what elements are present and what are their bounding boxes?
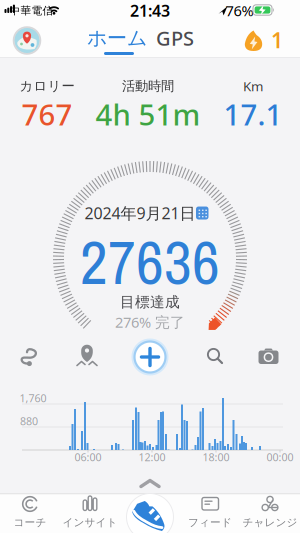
staticText: 1,760 [19, 391, 46, 405]
button[interactable]: 日付を選択 [81, 203, 211, 223]
staticText: 中華電信 [9, 4, 53, 17]
button[interactable]: 追加 [129, 336, 171, 378]
button[interactable]: カメラ [257, 347, 281, 367]
button[interactable]: ルート [15, 343, 43, 371]
button[interactable]: マップ [75, 344, 99, 368]
staticText: 2024年9月21日 [84, 202, 195, 224]
button[interactable]: フィード [181, 493, 239, 531]
staticText: 活動時間 [122, 78, 174, 94]
button[interactable]: チャレンジ [241, 493, 299, 531]
staticText: フィード [188, 516, 232, 529]
staticText: 880 [20, 414, 38, 428]
button[interactable]: ホーム [126, 493, 174, 533]
staticText: 目標達成 [120, 293, 180, 311]
staticText: 06:00 [74, 450, 101, 464]
staticText: GPS [156, 25, 194, 51]
staticText: 18:00 [202, 450, 229, 464]
staticText: ホーム [87, 26, 147, 50]
button[interactable]: ストリーク [240, 27, 286, 54]
staticText: 21:43 [130, 0, 170, 21]
button[interactable]: 検索 [204, 346, 226, 368]
staticText: 4h 51m [95, 94, 200, 133]
staticText: カロリー [19, 78, 74, 94]
button[interactable]: コーチ [1, 493, 59, 531]
staticText: 27636 [80, 221, 220, 303]
staticText: 00:00 [266, 450, 293, 464]
staticText: 17.1 [223, 94, 282, 133]
button[interactable]: 上にスワイプ [138, 477, 162, 490]
button[interactable]: ホーム [95, 27, 139, 57]
button[interactable]: プロフィール [13, 26, 41, 54]
staticText: コーチ [13, 516, 46, 529]
staticText: 767 [21, 94, 72, 133]
staticText: 76% [225, 1, 253, 20]
staticText: チャレンジ [242, 516, 297, 529]
staticText: 1 [271, 26, 283, 54]
button[interactable]: インサイト [61, 493, 119, 531]
staticText: Km [243, 77, 263, 95]
button[interactable]: GPS [155, 26, 195, 50]
staticText: インサイト [62, 516, 117, 529]
staticText: 12:00 [138, 450, 165, 464]
staticText: 276% 完了 [115, 312, 185, 332]
